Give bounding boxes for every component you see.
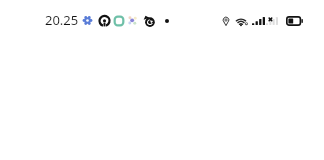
other: No SIM xyxy=(266,17,278,25)
other: More notifications xyxy=(165,19,169,23)
button[interactable]: Status bar xyxy=(0,0,324,40)
other: Location in use xyxy=(222,16,230,26)
other: Battery 46 percent xyxy=(286,16,303,26)
other: Mobile signal full xyxy=(252,17,265,25)
other: Clock notification xyxy=(144,16,155,27)
staticText: 20.25 xyxy=(45,11,79,29)
other: Settings notification xyxy=(83,16,92,25)
other: Recording notification xyxy=(98,15,111,28)
other: App notification xyxy=(113,15,125,27)
other: Wi-Fi connected xyxy=(235,16,248,26)
other: Google app notification xyxy=(128,16,137,25)
